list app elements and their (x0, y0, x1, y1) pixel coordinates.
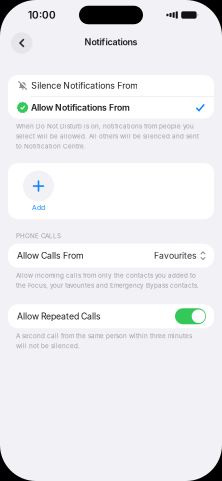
staticText: Add (32, 203, 45, 212)
staticText: A second call from the same person withi… (16, 332, 192, 350)
button[interactable]: Back (11, 32, 32, 54)
button[interactable]: Silence Notifications From (8, 75, 214, 96)
button[interactable]: Add (23, 170, 54, 212)
staticText: Favourites (154, 250, 197, 261)
staticText: Allow Notifications From (31, 102, 130, 113)
staticText: Allow incoming calls from only the conta… (16, 272, 199, 289)
staticText: Allow Calls From (17, 250, 84, 261)
staticText: PHONE CALLS (16, 232, 61, 240)
button[interactable]: Allow Repeated Calls (8, 304, 214, 328)
staticText: 10:00 (28, 9, 56, 21)
button[interactable]: Allow Calls From (8, 244, 214, 268)
staticText: When Do Not Disturb is on, notifications… (16, 122, 199, 150)
staticText: Notifications (84, 36, 137, 47)
button[interactable]: Allow Notifications From (8, 96, 214, 118)
staticText: Allow Repeated Calls (17, 311, 101, 321)
staticText: Silence Notifications From (31, 80, 138, 91)
